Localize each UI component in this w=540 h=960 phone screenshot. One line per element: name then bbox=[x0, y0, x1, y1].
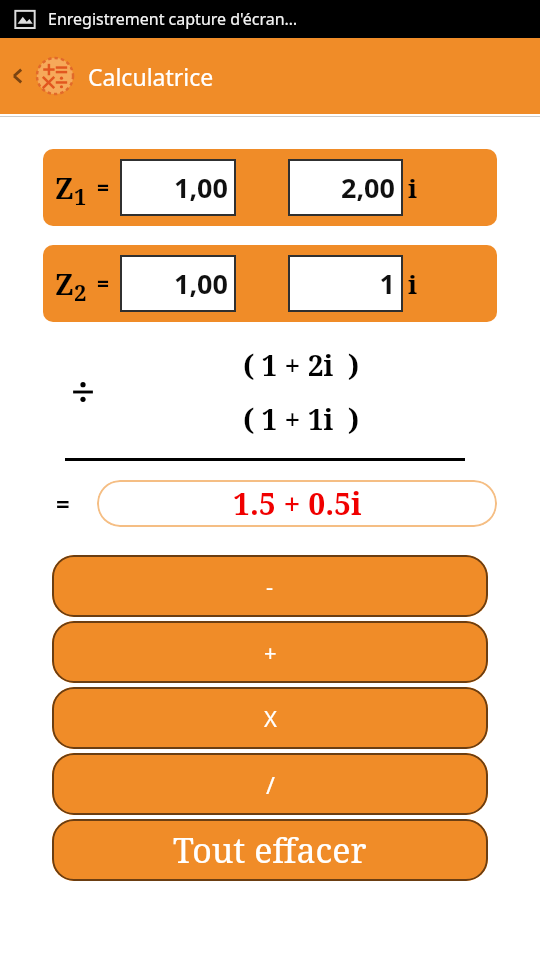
staticText: Enregistrement capture d'écran… bbox=[48, 8, 298, 30]
staticText: = bbox=[97, 269, 110, 298]
staticText: ( 1 + 2i ) bbox=[243, 346, 360, 384]
staticText: Z bbox=[55, 169, 74, 207]
staticText: X bbox=[264, 703, 277, 733]
staticText: 1.5 + 0.5i bbox=[233, 483, 362, 524]
staticText: / bbox=[266, 768, 275, 801]
staticText: 1 bbox=[74, 181, 87, 211]
other: App icon bbox=[36, 57, 74, 95]
staticText: Tout effacer bbox=[173, 827, 367, 873]
button[interactable]: 1.5 + 0.5i bbox=[97, 480, 497, 527]
button[interactable]: Z bbox=[43, 149, 497, 226]
staticText: = bbox=[97, 173, 110, 202]
staticText: 2 bbox=[74, 277, 87, 307]
staticText: - bbox=[266, 571, 274, 601]
staticText: Z bbox=[55, 265, 74, 303]
staticText: + bbox=[264, 637, 277, 667]
button[interactable]: 1,00 bbox=[120, 255, 236, 312]
staticText: 1,00 bbox=[173, 169, 228, 206]
button[interactable]: Back bbox=[0, 38, 36, 114]
button[interactable]: 1,00 bbox=[120, 159, 236, 216]
button[interactable]: Tout effacer bbox=[52, 819, 488, 881]
button[interactable]: + bbox=[52, 621, 488, 683]
staticText: 1,00 bbox=[173, 265, 228, 302]
staticText: = bbox=[56, 487, 70, 520]
button[interactable]: - bbox=[52, 555, 488, 617]
staticText: i bbox=[408, 266, 418, 301]
button[interactable]: 2,00 bbox=[288, 159, 403, 216]
staticText: 2,00 bbox=[340, 169, 395, 206]
staticText: ( 1 + 1i ) bbox=[243, 400, 360, 438]
button[interactable]: Z bbox=[43, 245, 497, 322]
staticText: 1 bbox=[379, 265, 395, 302]
button[interactable]: / bbox=[52, 753, 488, 815]
button[interactable]: 1 bbox=[288, 255, 403, 312]
staticText: i bbox=[408, 170, 418, 205]
button[interactable]: X bbox=[52, 687, 488, 749]
staticText: Calculatrice bbox=[88, 61, 214, 92]
